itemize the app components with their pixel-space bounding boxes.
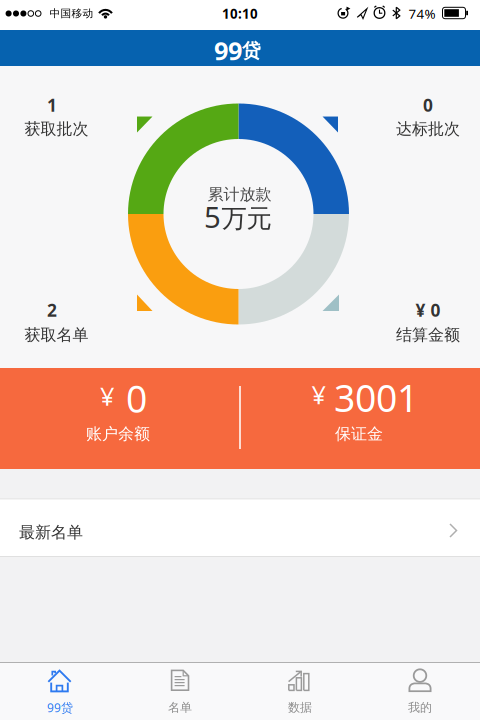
staticText: ¥ bbox=[100, 379, 114, 413]
staticText: 累计放款 bbox=[207, 185, 271, 204]
staticText: ¥ bbox=[311, 378, 325, 411]
staticText: 获取名单 bbox=[24, 325, 88, 345]
staticText: 中国移动 bbox=[49, 7, 93, 20]
staticText: ¥ 0 bbox=[415, 298, 440, 321]
staticText: 名单 bbox=[168, 700, 192, 715]
staticText: 获取批次 bbox=[24, 119, 88, 139]
staticText: 保证金 bbox=[335, 424, 383, 444]
staticText: 1 bbox=[47, 93, 57, 116]
staticText: 最新名单 bbox=[19, 523, 83, 542]
staticText: 99贷 bbox=[47, 699, 73, 715]
staticText: 账户余额 bbox=[86, 424, 150, 444]
staticText: 达标批次 bbox=[396, 119, 460, 139]
staticText: 74% bbox=[408, 5, 435, 22]
staticText: 结算金额 bbox=[396, 325, 460, 345]
staticText: 我的 bbox=[408, 700, 432, 715]
staticText: 0 bbox=[423, 93, 433, 116]
staticText: 2 bbox=[47, 298, 57, 321]
staticText: 3001 bbox=[334, 373, 418, 422]
staticText: 5 bbox=[204, 197, 221, 236]
staticText: 99 bbox=[214, 33, 242, 67]
staticText: 数据 bbox=[288, 700, 312, 715]
staticText: 10:10 bbox=[222, 5, 258, 22]
staticText: 万元 bbox=[221, 203, 271, 234]
staticText: 0 bbox=[126, 373, 147, 423]
staticText: 贷 bbox=[242, 39, 261, 62]
